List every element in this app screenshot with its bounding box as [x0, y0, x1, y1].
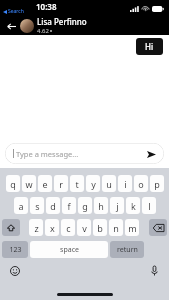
button[interactable]: t — [70, 175, 84, 192]
button[interactable]: u — [102, 175, 116, 192]
button[interactable]: Emoji — [8, 264, 22, 278]
button[interactable]: m — [125, 219, 139, 236]
staticText: 10:38 — [36, 1, 57, 12]
staticText: b — [97, 222, 103, 234]
button[interactable]: j — [110, 197, 124, 214]
staticText: k — [131, 200, 136, 212]
button[interactable]: x — [45, 219, 59, 236]
staticText: u — [106, 178, 112, 190]
staticText: y — [91, 178, 96, 190]
staticText: space — [60, 245, 79, 255]
staticText: c — [66, 222, 71, 234]
staticText: Type a message... — [16, 149, 142, 159]
button[interactable]: w — [22, 175, 36, 192]
button[interactable]: space — [30, 241, 108, 258]
button[interactable]: z — [29, 219, 43, 236]
button[interactable] — [149, 219, 167, 236]
button[interactable]: Back — [4, 19, 18, 33]
staticText: return — [117, 245, 138, 255]
button[interactable]: y — [86, 175, 100, 192]
button[interactable]: l — [142, 197, 156, 214]
staticText: z — [34, 222, 39, 234]
button[interactable] — [2, 219, 20, 236]
staticText: 4.62 — [37, 27, 49, 35]
staticText: f — [67, 200, 71, 212]
button[interactable]: d — [46, 197, 60, 214]
staticText: 123 — [9, 245, 22, 255]
staticText: i — [124, 178, 127, 190]
button[interactable]: Dictation — [147, 264, 161, 278]
button[interactable]: Type a message... — [5, 143, 164, 164]
staticText: Hi — [145, 41, 154, 52]
button[interactable]: f — [62, 197, 76, 214]
button[interactable]: q — [6, 175, 20, 192]
staticText: w — [25, 178, 33, 190]
staticText: n — [113, 222, 119, 234]
staticText: x — [50, 222, 55, 234]
staticText: r — [59, 178, 63, 190]
button[interactable]: k — [126, 197, 140, 214]
button[interactable]: p — [150, 175, 164, 192]
button[interactable]: o — [134, 175, 148, 192]
staticText: Lisa Perfinno — [37, 16, 87, 27]
staticText: o — [138, 178, 144, 190]
button[interactable]: s — [30, 197, 44, 214]
staticText: g — [82, 200, 88, 212]
staticText: Search — [8, 8, 24, 15]
staticText: m — [128, 222, 137, 234]
button[interactable]: b — [93, 219, 107, 236]
button[interactable]: Lisa Perfinno — [37, 16, 169, 35]
button[interactable]: return — [110, 241, 144, 258]
button[interactable]: v — [77, 219, 91, 236]
staticText: v — [82, 222, 87, 234]
staticText: s — [35, 200, 40, 212]
staticText: a — [18, 200, 24, 212]
button[interactable]: i — [118, 175, 132, 192]
button[interactable]: c — [61, 219, 75, 236]
button[interactable]: Hi — [136, 38, 163, 55]
staticText: e — [42, 178, 48, 190]
button[interactable]: r — [54, 175, 68, 192]
button[interactable]: n — [109, 219, 123, 236]
staticText: q — [10, 178, 16, 190]
staticText: p — [154, 178, 160, 190]
button[interactable]: a — [14, 197, 28, 214]
staticText: d — [50, 200, 56, 212]
button[interactable]: 123 — [2, 241, 28, 258]
button[interactable]: e — [38, 175, 52, 192]
button[interactable]: Profile photo — [20, 19, 34, 33]
staticText: t — [75, 178, 79, 190]
staticText: h — [98, 200, 104, 212]
button[interactable]: g — [78, 197, 92, 214]
button[interactable]: h — [94, 197, 108, 214]
button[interactable]: Send — [142, 145, 160, 163]
staticText: l — [148, 200, 151, 212]
staticText: j — [116, 200, 119, 212]
